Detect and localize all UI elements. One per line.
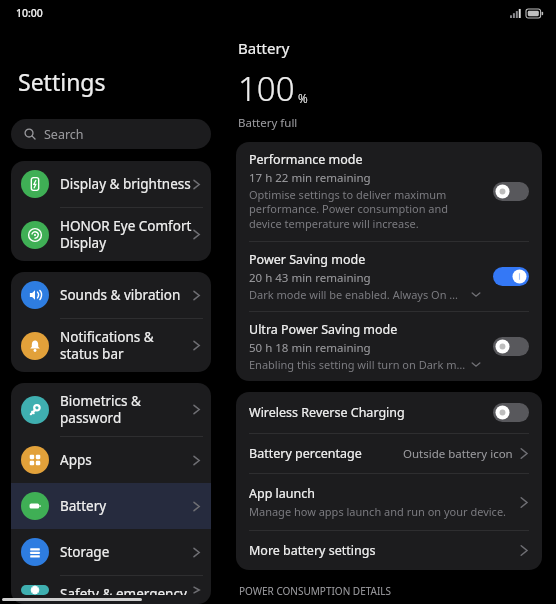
staticText: Battery full — [238, 115, 298, 131]
button[interactable]: HONOR Eye Comfort Display — [11, 208, 211, 261]
staticText: Wireless Reverse Charging — [249, 404, 405, 421]
button[interactable]: Safety & emergency — [11, 576, 211, 604]
staticText: POWER CONSUMPTION DETAILS — [239, 584, 392, 598]
staticText: 100 — [238, 66, 295, 111]
button[interactable]: Notifications & status bar — [11, 319, 211, 372]
staticText: Battery — [60, 497, 192, 515]
staticText: App launch — [249, 485, 316, 502]
staticText: Biometrics & password — [60, 392, 192, 427]
staticText: % — [298, 90, 308, 106]
button[interactable]: Toggle on — [493, 267, 529, 286]
button[interactable]: Battery percentage — [236, 434, 542, 473]
staticText: Storage — [60, 543, 192, 561]
staticText: 10:00 — [16, 6, 43, 20]
button[interactable]: Display & brightness — [11, 161, 211, 207]
staticText: Optimise settings to deliver maximum per… — [249, 187, 481, 232]
staticText: Ultra Power Saving mode — [249, 321, 398, 338]
button[interactable]: Power Saving mode — [236, 242, 542, 311]
button[interactable]: Toggle off — [493, 403, 529, 422]
button[interactable]: Biometrics & password — [11, 383, 211, 436]
staticText: More battery settings — [249, 542, 376, 559]
button[interactable]: Battery — [11, 483, 211, 529]
staticText: 20 h 43 min remaining — [249, 270, 371, 286]
staticText: Safety & emergency — [60, 585, 192, 595]
button[interactable]: Storage — [11, 529, 211, 575]
button[interactable]: Performance mode — [236, 142, 542, 241]
button[interactable]: More battery settings — [236, 531, 542, 570]
staticText: 17 h 22 min remaining — [249, 170, 371, 186]
button[interactable]: Apps — [11, 437, 211, 483]
staticText: HONOR Eye Comfort Display — [60, 217, 192, 252]
staticText: Power Saving mode — [249, 251, 366, 268]
button[interactable]: Search — [11, 119, 211, 149]
button[interactable]: App launch — [236, 474, 542, 530]
staticText: Battery percentage — [249, 445, 362, 462]
staticText: Display & brightness — [60, 175, 192, 193]
button[interactable]: Ultra Power Saving mode — [236, 312, 542, 381]
staticText: Enabling this setting will turn on Dark … — [249, 357, 466, 372]
staticText: Dark mode will be enabled. Always On Dis… — [249, 287, 466, 302]
button[interactable]: Sounds & vibration — [11, 272, 211, 318]
staticText: Search — [44, 126, 84, 143]
staticText: Settings — [18, 66, 106, 97]
button[interactable]: Toggle off — [493, 337, 529, 356]
staticText: 50 h 18 min remaining — [249, 340, 371, 356]
staticText: Manage how apps launch and run on your d… — [249, 504, 507, 519]
staticText: Notifications & status bar — [60, 328, 192, 363]
staticText: Battery — [238, 38, 290, 58]
staticText: Apps — [60, 451, 192, 469]
button[interactable]: Wireless Reverse Charging — [236, 392, 542, 433]
staticText: Performance mode — [249, 151, 363, 168]
staticText: Sounds & vibration — [60, 286, 192, 304]
button[interactable]: Toggle off — [493, 182, 529, 201]
staticText: Outside battery icon — [403, 446, 513, 462]
